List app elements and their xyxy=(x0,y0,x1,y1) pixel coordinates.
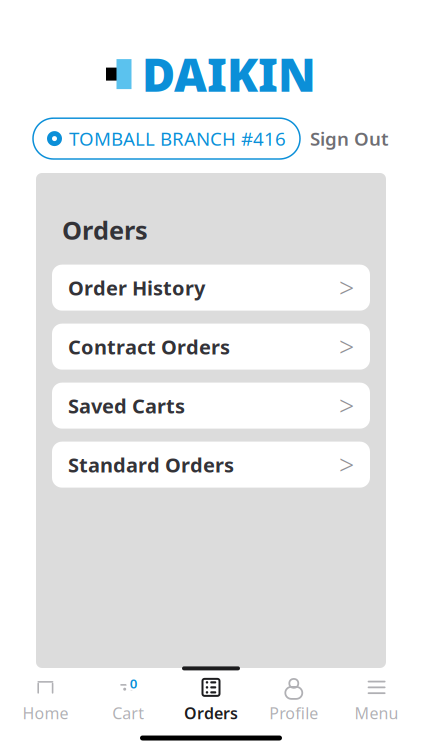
staticText: Order History xyxy=(68,274,205,301)
button[interactable]: Contract Orders xyxy=(52,324,370,370)
staticText: Menu xyxy=(355,702,399,724)
staticText: > xyxy=(339,388,354,423)
staticText: DAIKIN xyxy=(142,44,316,104)
staticText: > xyxy=(339,329,354,364)
staticText: Cart xyxy=(112,702,144,724)
staticText: Profile xyxy=(269,702,318,724)
button[interactable]: TOMBALL BRANCH #416 xyxy=(33,118,300,159)
button[interactable]: Saved Carts xyxy=(52,383,370,429)
staticText: Saved Carts xyxy=(68,392,185,419)
button[interactable]: Orders xyxy=(170,666,252,728)
button[interactable]: Menu xyxy=(335,666,418,728)
staticText: > xyxy=(339,270,354,305)
staticText: 0 xyxy=(130,674,138,692)
button[interactable]: Standard Orders xyxy=(52,442,370,488)
button[interactable]: Sign Out xyxy=(310,120,389,157)
button[interactable]: Home xyxy=(4,666,87,728)
button[interactable]: 0 xyxy=(87,666,170,728)
staticText: Home xyxy=(22,702,68,724)
staticText: TOMBALL BRANCH #416 xyxy=(69,126,286,151)
button[interactable]: Profile xyxy=(252,666,335,728)
staticText: Orders xyxy=(184,702,238,724)
staticText: Contract Orders xyxy=(68,333,230,360)
staticText: Standard Orders xyxy=(68,451,234,478)
button[interactable]: Order History xyxy=(52,265,370,311)
staticText: Sign Out xyxy=(310,126,389,151)
staticText: Orders xyxy=(62,213,148,247)
staticText: > xyxy=(339,447,354,482)
